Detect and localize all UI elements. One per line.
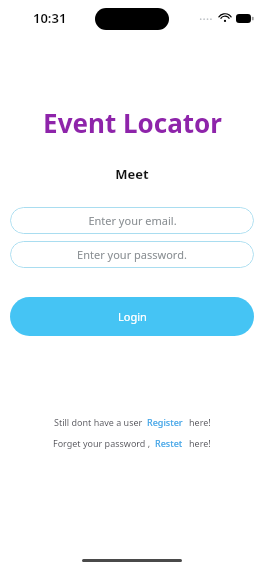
staticText: Register: [147, 416, 183, 428]
button[interactable]: Enter your email.: [10, 207, 254, 234]
staticText: 10:31: [33, 9, 67, 27]
staticText: Login: [118, 309, 147, 324]
staticText: Meet: [115, 165, 149, 183]
staticText: Still dont have a user: [54, 416, 143, 428]
staticText: Event Locator: [43, 105, 222, 140]
staticText: Restet: [155, 437, 183, 449]
staticText: Forget your password ,: [53, 437, 151, 449]
staticText: Enter your password.: [77, 247, 187, 262]
staticText: here!: [189, 437, 211, 449]
button[interactable]: Restet: [155, 437, 183, 449]
button[interactable]: Register: [147, 416, 183, 428]
staticText: here!: [189, 416, 211, 428]
button[interactable]: Enter your password.: [10, 241, 254, 268]
staticText: Enter your email.: [88, 213, 177, 228]
button[interactable]: Login: [10, 297, 254, 336]
